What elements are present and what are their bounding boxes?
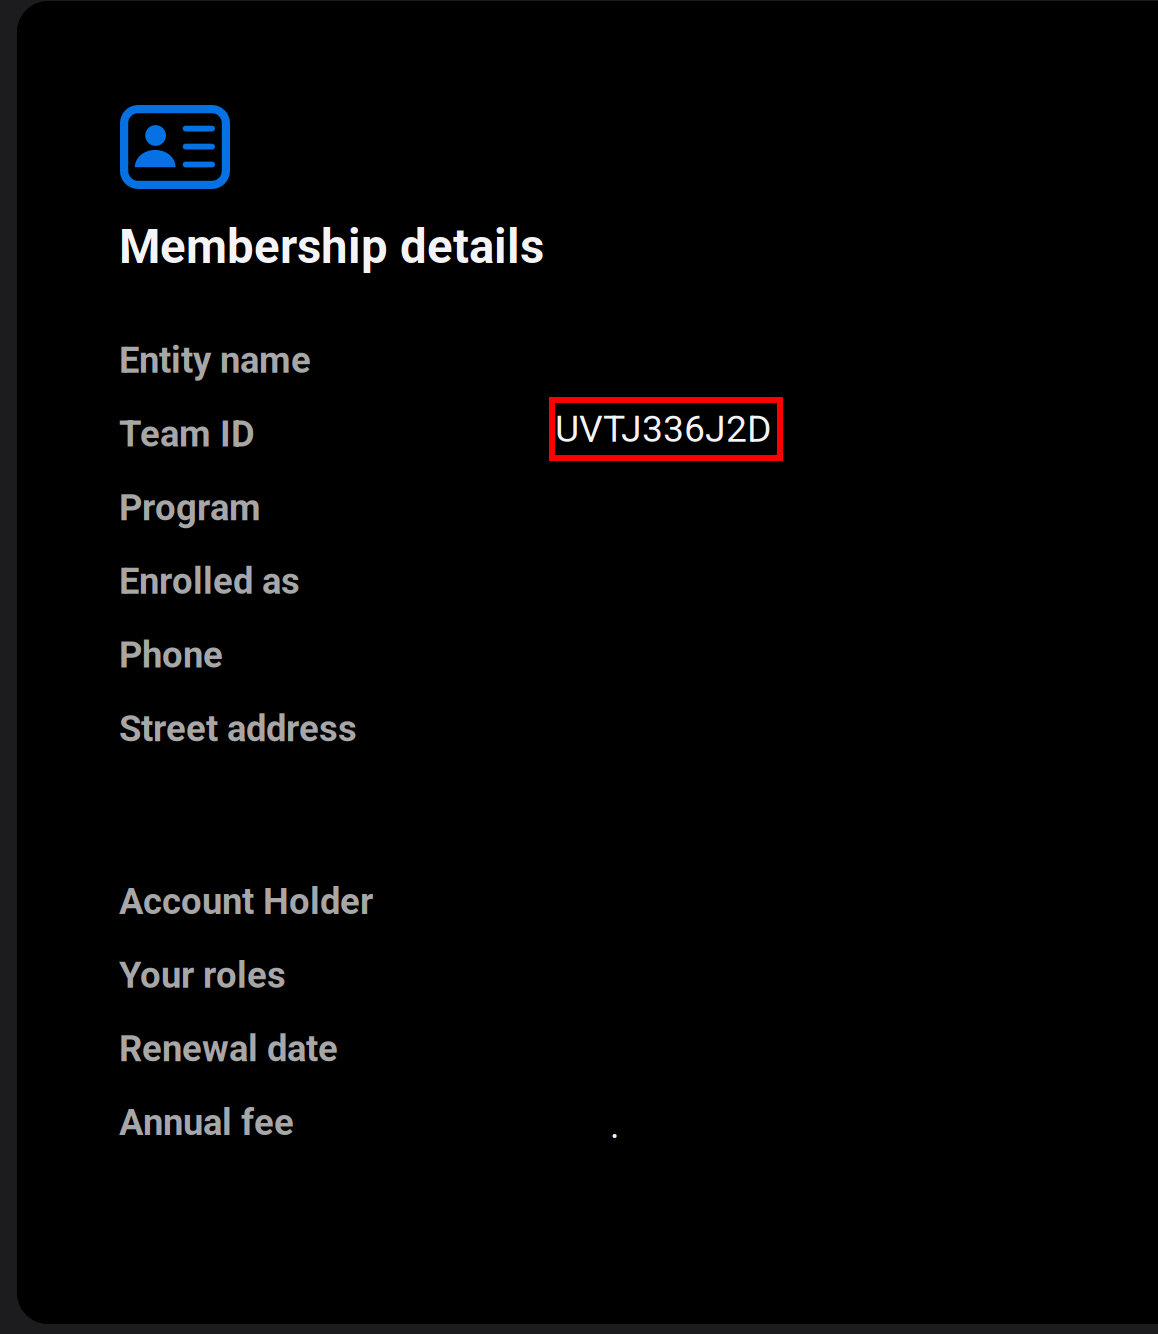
staticText: Phone: [119, 634, 223, 676]
staticText: UVTJ336J2D: [555, 407, 772, 451]
staticText: Team ID: [119, 413, 255, 455]
staticText: .: [610, 1104, 619, 1147]
staticText: Renewal date: [119, 1028, 338, 1070]
staticText: Membership details: [119, 219, 544, 274]
staticText: Street address: [119, 707, 357, 750]
button[interactable]: UVTJ336J2D: [549, 402, 783, 466]
staticText: Program: [119, 486, 261, 529]
staticText: Enrolled as: [119, 560, 300, 603]
staticText: Entity name: [119, 339, 311, 382]
staticText: Account Holder: [119, 880, 373, 923]
staticText: Annual fee: [119, 1101, 294, 1144]
staticText: Your roles: [119, 954, 286, 997]
